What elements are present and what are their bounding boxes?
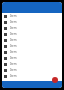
staticText: Item [10,32,17,36]
button[interactable]: Item [2,43,62,49]
button[interactable]: Item [2,55,62,61]
staticText: Item [10,44,17,48]
staticText: Item [10,68,17,72]
button[interactable]: Item [2,19,62,25]
staticText: Item [10,56,17,60]
button[interactable]: Item [2,67,62,73]
button[interactable]: Add [52,77,58,83]
button[interactable]: Item [2,73,62,79]
button[interactable]: Item [2,37,62,43]
staticText: Item [10,62,17,66]
button[interactable]: Item [2,25,62,31]
button[interactable]: Item [2,49,62,55]
button[interactable]: Item [2,31,62,37]
button[interactable]: Item [2,13,62,19]
button[interactable]: Item [2,61,62,67]
staticText: Item [10,20,17,24]
staticText: Item [10,26,17,30]
staticText: Item [10,14,17,18]
staticText: Item [10,50,17,54]
staticText: Item [10,74,17,78]
staticText: Item [10,38,17,42]
